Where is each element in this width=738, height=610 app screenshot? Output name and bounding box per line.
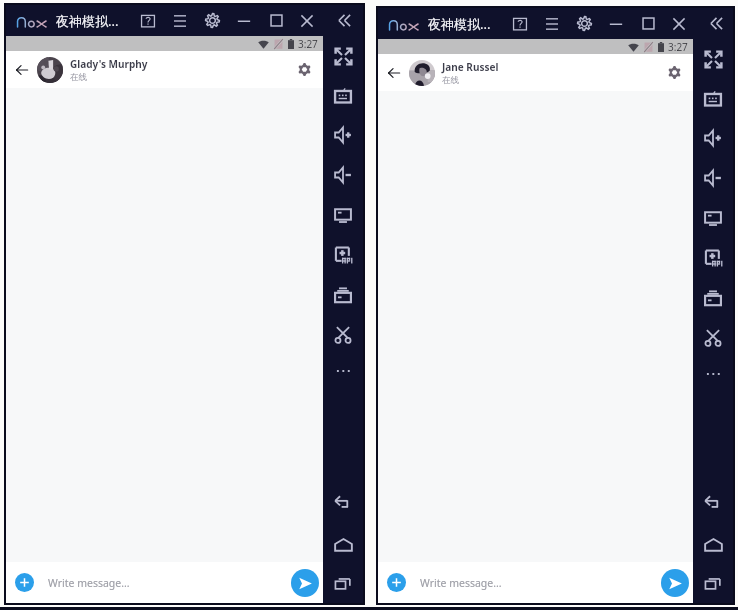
button[interactable]: Home	[693, 525, 733, 565]
button[interactable]: Help	[133, 5, 163, 36]
button[interactable]: Install APK	[693, 238, 733, 278]
button[interactable]: Settings	[197, 5, 227, 36]
button[interactable]: Minimize	[229, 5, 259, 36]
button[interactable]: Home	[323, 525, 363, 565]
staticText: Jane Russel	[442, 60, 499, 74]
button[interactable]: Collapse sidebar	[701, 8, 731, 39]
button[interactable]: Cut	[693, 318, 733, 358]
button[interactable]: Keyboard	[693, 79, 733, 119]
button[interactable]: Shared folder	[693, 278, 733, 318]
button[interactable]: Shared folder	[323, 275, 363, 315]
button[interactable]: Chat settings	[285, 51, 323, 88]
staticText: 夜神模拟...	[56, 12, 119, 30]
button[interactable]: Attach	[15, 573, 34, 592]
staticText: 3:27	[298, 37, 318, 51]
button[interactable]: Back	[378, 54, 409, 91]
button[interactable]: Menu	[165, 5, 195, 36]
button[interactable]: Volume up	[323, 115, 363, 155]
staticText: Write message...	[420, 576, 502, 590]
button[interactable]: Recent apps	[693, 564, 733, 604]
button[interactable]: Cut	[323, 315, 363, 355]
button[interactable]: Volume down	[693, 158, 733, 198]
button[interactable]: Attach	[387, 573, 406, 592]
button[interactable]: Collapse sidebar	[329, 5, 359, 36]
button[interactable]: Send	[291, 569, 319, 597]
staticText: 夜神模拟...	[428, 15, 491, 33]
button[interactable]: Recent apps	[323, 564, 363, 604]
button[interactable]: Help	[505, 8, 535, 39]
button[interactable]: More options	[693, 354, 733, 394]
button[interactable]: Fullscreen	[323, 36, 363, 76]
button[interactable]: Keyboard	[323, 76, 363, 116]
staticText: Write message...	[48, 576, 130, 590]
button[interactable]: Fullscreen	[693, 39, 733, 79]
button[interactable]: Volume down	[323, 155, 363, 195]
button[interactable]: Menu	[537, 8, 567, 39]
button[interactable]: Settings	[569, 8, 599, 39]
button[interactable]: Screenshot	[693, 198, 733, 238]
button[interactable]: Back	[693, 483, 733, 523]
staticText: 在线	[442, 75, 459, 86]
button[interactable]: Close	[292, 5, 322, 36]
button[interactable]: Minimize	[601, 8, 631, 39]
button[interactable]: Send	[661, 569, 689, 597]
staticText: 在线	[70, 72, 87, 83]
button[interactable]: Chat settings	[655, 54, 693, 91]
staticText: Glady's Murphy	[70, 57, 148, 71]
button[interactable]: Maximize	[633, 8, 663, 39]
button[interactable]: Back	[6, 51, 37, 88]
staticText: 3:27	[668, 40, 688, 54]
button[interactable]: Back	[323, 483, 363, 523]
button[interactable]: Maximize	[261, 5, 291, 36]
button[interactable]: More options	[323, 351, 363, 391]
button[interactable]: Screenshot	[323, 195, 363, 235]
button[interactable]: Volume up	[693, 118, 733, 158]
button[interactable]: Close	[664, 8, 694, 39]
button[interactable]: Install APK	[323, 235, 363, 275]
